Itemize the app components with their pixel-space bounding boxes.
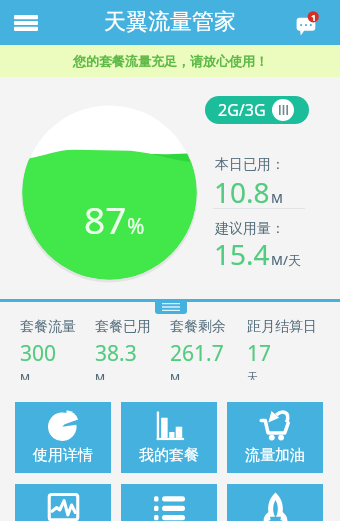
- button[interactable]: 使用详情: [15, 402, 111, 473]
- staticText: M: [20, 370, 31, 380]
- button[interactable]: 距月结算日: [247, 318, 321, 380]
- staticText: 套餐流量: [20, 318, 76, 336]
- staticText: 套餐已用: [95, 318, 151, 336]
- staticText: 距月结算日: [247, 318, 317, 336]
- button[interactable]: 加速: [227, 484, 323, 521]
- staticText: 1: [311, 11, 317, 23]
- staticText: 使用详情: [33, 446, 93, 465]
- staticText: 天: [247, 370, 258, 380]
- staticText: 我的套餐: [139, 446, 199, 465]
- button[interactable]: 业务办理: [121, 484, 217, 521]
- staticText: 17: [247, 339, 272, 368]
- staticText: 流量加油: [245, 446, 305, 465]
- button[interactable]: 套餐流量: [20, 318, 94, 380]
- staticText: %: [127, 212, 145, 241]
- button[interactable]: 套餐剩余: [170, 318, 244, 380]
- button[interactable]: 流量加油: [227, 402, 323, 473]
- button[interactable]: Menu: [6, 7, 46, 39]
- staticText: 10.8: [214, 173, 270, 211]
- staticText: 本日已用：: [215, 156, 285, 174]
- button[interactable]: 套餐已用: [95, 318, 169, 380]
- staticText: 天翼流量管家: [104, 8, 236, 36]
- button[interactable]: Expand panel: [155, 300, 187, 314]
- staticText: 87: [84, 194, 127, 244]
- staticText: 300: [20, 339, 57, 368]
- staticText: M: [95, 370, 106, 380]
- button[interactable]: 流量监控: [15, 484, 111, 521]
- staticText: M: [170, 370, 181, 380]
- button[interactable]: Messages: [290, 5, 324, 39]
- staticText: 建议用量：: [215, 220, 285, 238]
- staticText: 15.4: [214, 235, 270, 273]
- staticText: 2G/3G: [218, 99, 266, 121]
- staticText: 您的套餐流量充足，请放心使用！: [73, 53, 268, 69]
- button[interactable]: 我的套餐: [121, 402, 217, 473]
- button[interactable]: 2G/3G: [205, 96, 309, 124]
- staticText: M/天: [271, 251, 301, 269]
- staticText: 38.3: [95, 339, 137, 368]
- staticText: 套餐剩余: [170, 318, 226, 336]
- staticText: M: [271, 189, 283, 207]
- staticText: 261.7: [170, 339, 224, 368]
